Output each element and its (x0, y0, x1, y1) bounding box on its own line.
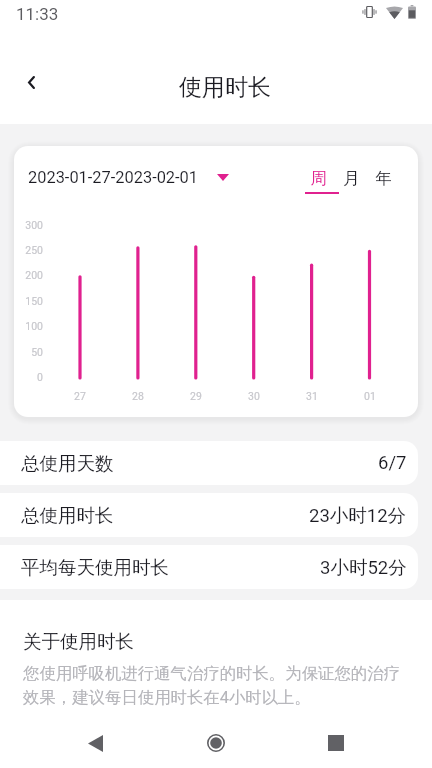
button[interactable]: Back (9, 60, 54, 105)
staticText: 30 (248, 390, 260, 402)
staticText: 3小时52分 (320, 556, 407, 579)
staticText: 300 (25, 219, 43, 231)
staticText: 年 (375, 168, 392, 189)
button[interactable]: 周 (299, 158, 337, 194)
staticText: 29 (190, 390, 202, 402)
staticText: 11:33 (16, 4, 59, 24)
button[interactable]: Back (77, 725, 113, 761)
button[interactable]: 2023-01-27-2023-02-01 (28, 168, 229, 186)
staticText: 31 (306, 390, 318, 402)
staticText: 使用时长 (179, 73, 271, 102)
staticText: 23小时12分 (309, 504, 407, 527)
staticText: 50 (31, 346, 43, 358)
staticText: 100 (25, 320, 43, 332)
staticText: 关于使用时长 (23, 630, 134, 653)
staticText: 您使用呼吸机进行通气治疗的时长。为保证您的治疗效果，建议每日使用时长在4小时以上… (23, 663, 402, 708)
staticText: 28 (132, 390, 144, 402)
staticText: 月 (343, 168, 360, 189)
staticText: 6/7 (378, 452, 407, 474)
staticText: 01 (364, 390, 376, 402)
button[interactable]: Home (198, 725, 234, 761)
staticText: 27 (74, 390, 86, 402)
button[interactable]: Recents (318, 725, 354, 761)
staticText: 总使用天数 (21, 452, 114, 475)
button[interactable]: 总使用时长 (0, 493, 418, 537)
button[interactable]: 月 (332, 158, 370, 194)
staticText: 150 (25, 295, 43, 307)
staticText: 平均每天使用时长 (21, 556, 169, 579)
staticText: 2023-01-27-2023-02-01 (28, 168, 199, 186)
button[interactable]: 年 (364, 158, 402, 194)
button[interactable]: 总使用天数 (0, 441, 418, 485)
staticText: 周 (310, 168, 327, 189)
button[interactable]: 平均每天使用时长 (0, 545, 418, 589)
staticText: 总使用时长 (21, 504, 114, 527)
staticText: 250 (25, 244, 43, 256)
staticText: 200 (25, 269, 43, 281)
staticText: 0 (37, 371, 43, 383)
